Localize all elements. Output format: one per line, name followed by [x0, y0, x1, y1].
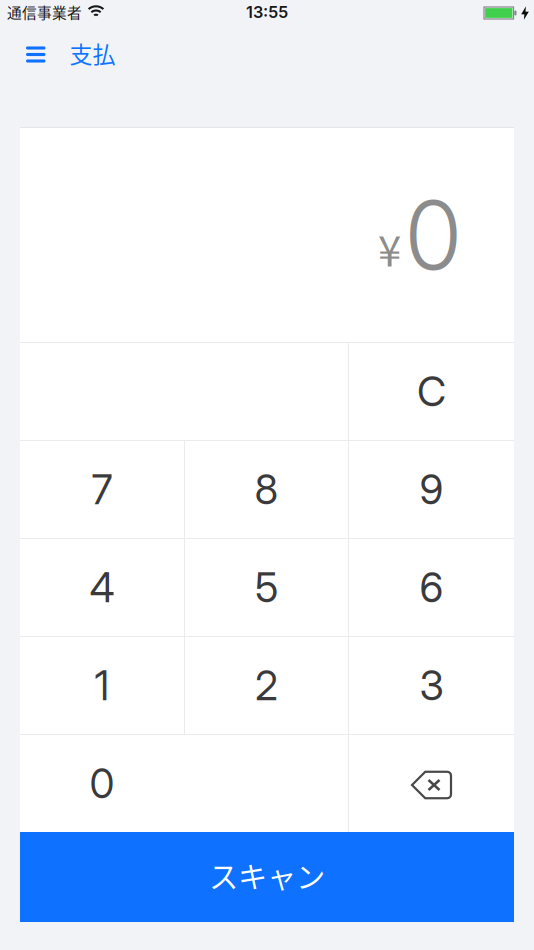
button[interactable]: 4 — [20, 539, 184, 636]
staticText: スキャン — [209, 854, 325, 896]
button[interactable]: 1 — [20, 637, 184, 734]
staticText: 通信事業者 — [7, 1, 82, 23]
button[interactable]: 6 — [349, 539, 514, 636]
staticText: 4 — [89, 563, 114, 612]
staticText: C — [417, 367, 446, 416]
staticText: 支払 — [69, 36, 115, 70]
staticText: 8 — [254, 465, 278, 514]
button[interactable]: スキャン — [20, 832, 514, 922]
staticText: 7 — [91, 465, 112, 514]
button[interactable]: 9 — [349, 441, 514, 538]
button[interactable]: 支払 — [45, 38, 115, 72]
staticText: 9 — [419, 465, 443, 514]
staticText: 2 — [255, 661, 278, 710]
staticText: 0 — [89, 759, 114, 808]
staticText: 3 — [419, 661, 443, 710]
button[interactable]: 8 — [185, 441, 348, 538]
button[interactable]: 削除 — [349, 735, 514, 832]
staticText: ¥ — [378, 218, 401, 279]
staticText: 13:55 — [246, 2, 288, 22]
staticText: 5 — [255, 563, 278, 612]
staticText: 6 — [419, 563, 443, 612]
button[interactable]: C — [349, 343, 514, 440]
button[interactable]: 5 — [185, 539, 348, 636]
button[interactable]: 3 — [349, 637, 514, 734]
button[interactable]: 2 — [185, 637, 348, 734]
button[interactable]: メニュー — [0, 37, 45, 73]
button[interactable]: 7 — [20, 441, 184, 538]
staticText: 1 — [94, 661, 109, 710]
button[interactable]: 0 — [20, 735, 348, 832]
staticText: 0 — [404, 177, 463, 292]
